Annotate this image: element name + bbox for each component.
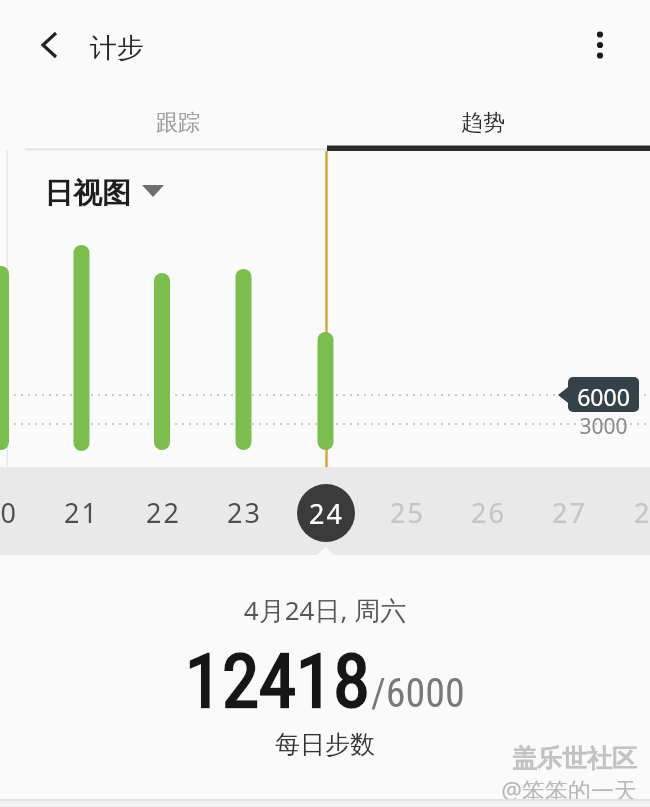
staticText: 日视图 bbox=[44, 175, 131, 212]
staticText: 25 bbox=[390, 494, 425, 531]
staticText: /6000 bbox=[371, 670, 465, 717]
staticText: 21 bbox=[64, 494, 99, 531]
staticText: 27 bbox=[552, 494, 587, 531]
staticText: 盖乐世社区 bbox=[0, 743, 637, 774]
button[interactable]: 24 bbox=[297, 484, 355, 542]
button[interactable]: 22 bbox=[123, 482, 203, 542]
staticText: @笨笨的一天 bbox=[0, 774, 637, 805]
button[interactable] bbox=[26, 22, 72, 68]
staticText: 计步 bbox=[90, 31, 144, 65]
button[interactable]: 26 bbox=[448, 482, 528, 542]
staticText: 每日步数 bbox=[0, 729, 650, 760]
staticText: 12418 bbox=[185, 637, 371, 725]
staticText: 23 bbox=[227, 494, 262, 531]
staticText: 26 bbox=[471, 494, 506, 531]
button[interactable] bbox=[578, 22, 622, 68]
staticText: 6000 bbox=[568, 381, 639, 412]
button[interactable]: 25 bbox=[367, 482, 447, 542]
staticText: 4月24日, 周六 bbox=[0, 592, 650, 628]
staticText: 3000 bbox=[568, 412, 639, 441]
staticText: 20 bbox=[0, 494, 18, 531]
button[interactable]: 20 bbox=[0, 482, 40, 542]
button[interactable]: 27 bbox=[529, 482, 609, 542]
staticText: 28 bbox=[634, 494, 650, 531]
staticText: 24 bbox=[309, 495, 344, 532]
staticText: 趋势 bbox=[461, 109, 505, 137]
button[interactable]: 28 bbox=[611, 482, 650, 542]
button[interactable]: 21 bbox=[41, 482, 121, 542]
button[interactable]: 23 bbox=[204, 482, 284, 542]
button[interactable]: 跟踪 bbox=[25, 100, 330, 145]
button[interactable]: 日视图 bbox=[38, 164, 174, 212]
staticText: 22 bbox=[146, 494, 181, 531]
staticText: 跟踪 bbox=[156, 109, 200, 137]
button[interactable]: 趋势 bbox=[330, 100, 636, 145]
